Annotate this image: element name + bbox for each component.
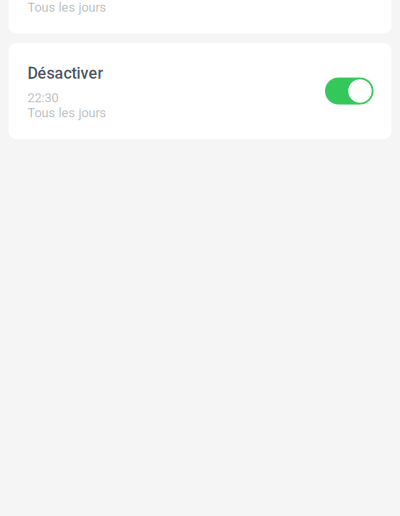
staticText: 22:30 (27, 90, 58, 105)
button[interactable]: Désactiver (8, 43, 391, 139)
button[interactable]: Réveil (8, 0, 391, 33)
staticText: Désactiver (27, 64, 103, 83)
staticText: Tous les jours (27, 0, 106, 15)
staticText: Tous les jours (27, 105, 106, 120)
button[interactable]: Alarme activée (325, 77, 373, 104)
